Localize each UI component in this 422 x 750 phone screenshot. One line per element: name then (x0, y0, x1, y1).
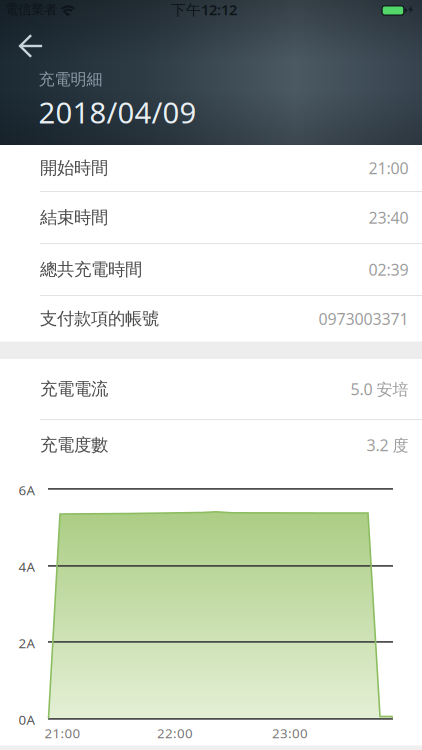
staticText: 下午12:12 (171, 0, 237, 19)
staticText: 23:00 (272, 724, 308, 742)
staticText: 充電明細 (38, 69, 102, 89)
staticText: 02:39 (368, 259, 408, 280)
button[interactable] (9, 24, 53, 68)
staticText: 0973003371 (318, 308, 408, 329)
staticText: 2018/04/09 (38, 93, 196, 132)
button[interactable]: 充電度數 (0, 420, 422, 470)
staticText: 支付款項的帳號 (40, 308, 159, 329)
button[interactable]: 支付款項的帳號 (0, 296, 422, 341)
staticText: 21:00 (44, 724, 80, 742)
staticText: 電信業者 (5, 1, 57, 18)
button[interactable]: 充電電流 (0, 359, 422, 420)
staticText: 23:40 (368, 207, 408, 228)
staticText: 總共充電時間 (40, 259, 142, 280)
staticText: 6A (18, 481, 35, 499)
staticText: 5.0 安培 (350, 378, 408, 400)
staticText: 結束時間 (40, 207, 108, 228)
button[interactable]: 開始時間 (0, 145, 422, 192)
staticText: 22:00 (157, 724, 193, 742)
button[interactable]: 總共充電時間 (0, 244, 422, 296)
staticText: 開始時間 (40, 157, 108, 179)
staticText: 0A (18, 711, 35, 728)
staticText: 充電度數 (40, 434, 108, 456)
staticText: 21:00 (368, 157, 408, 179)
button[interactable]: 結束時間 (0, 192, 422, 244)
staticText: 3.2 度 (366, 434, 408, 456)
staticText: 2A (18, 634, 35, 652)
staticText: 4A (18, 558, 35, 575)
staticText: 充電電流 (40, 378, 108, 400)
